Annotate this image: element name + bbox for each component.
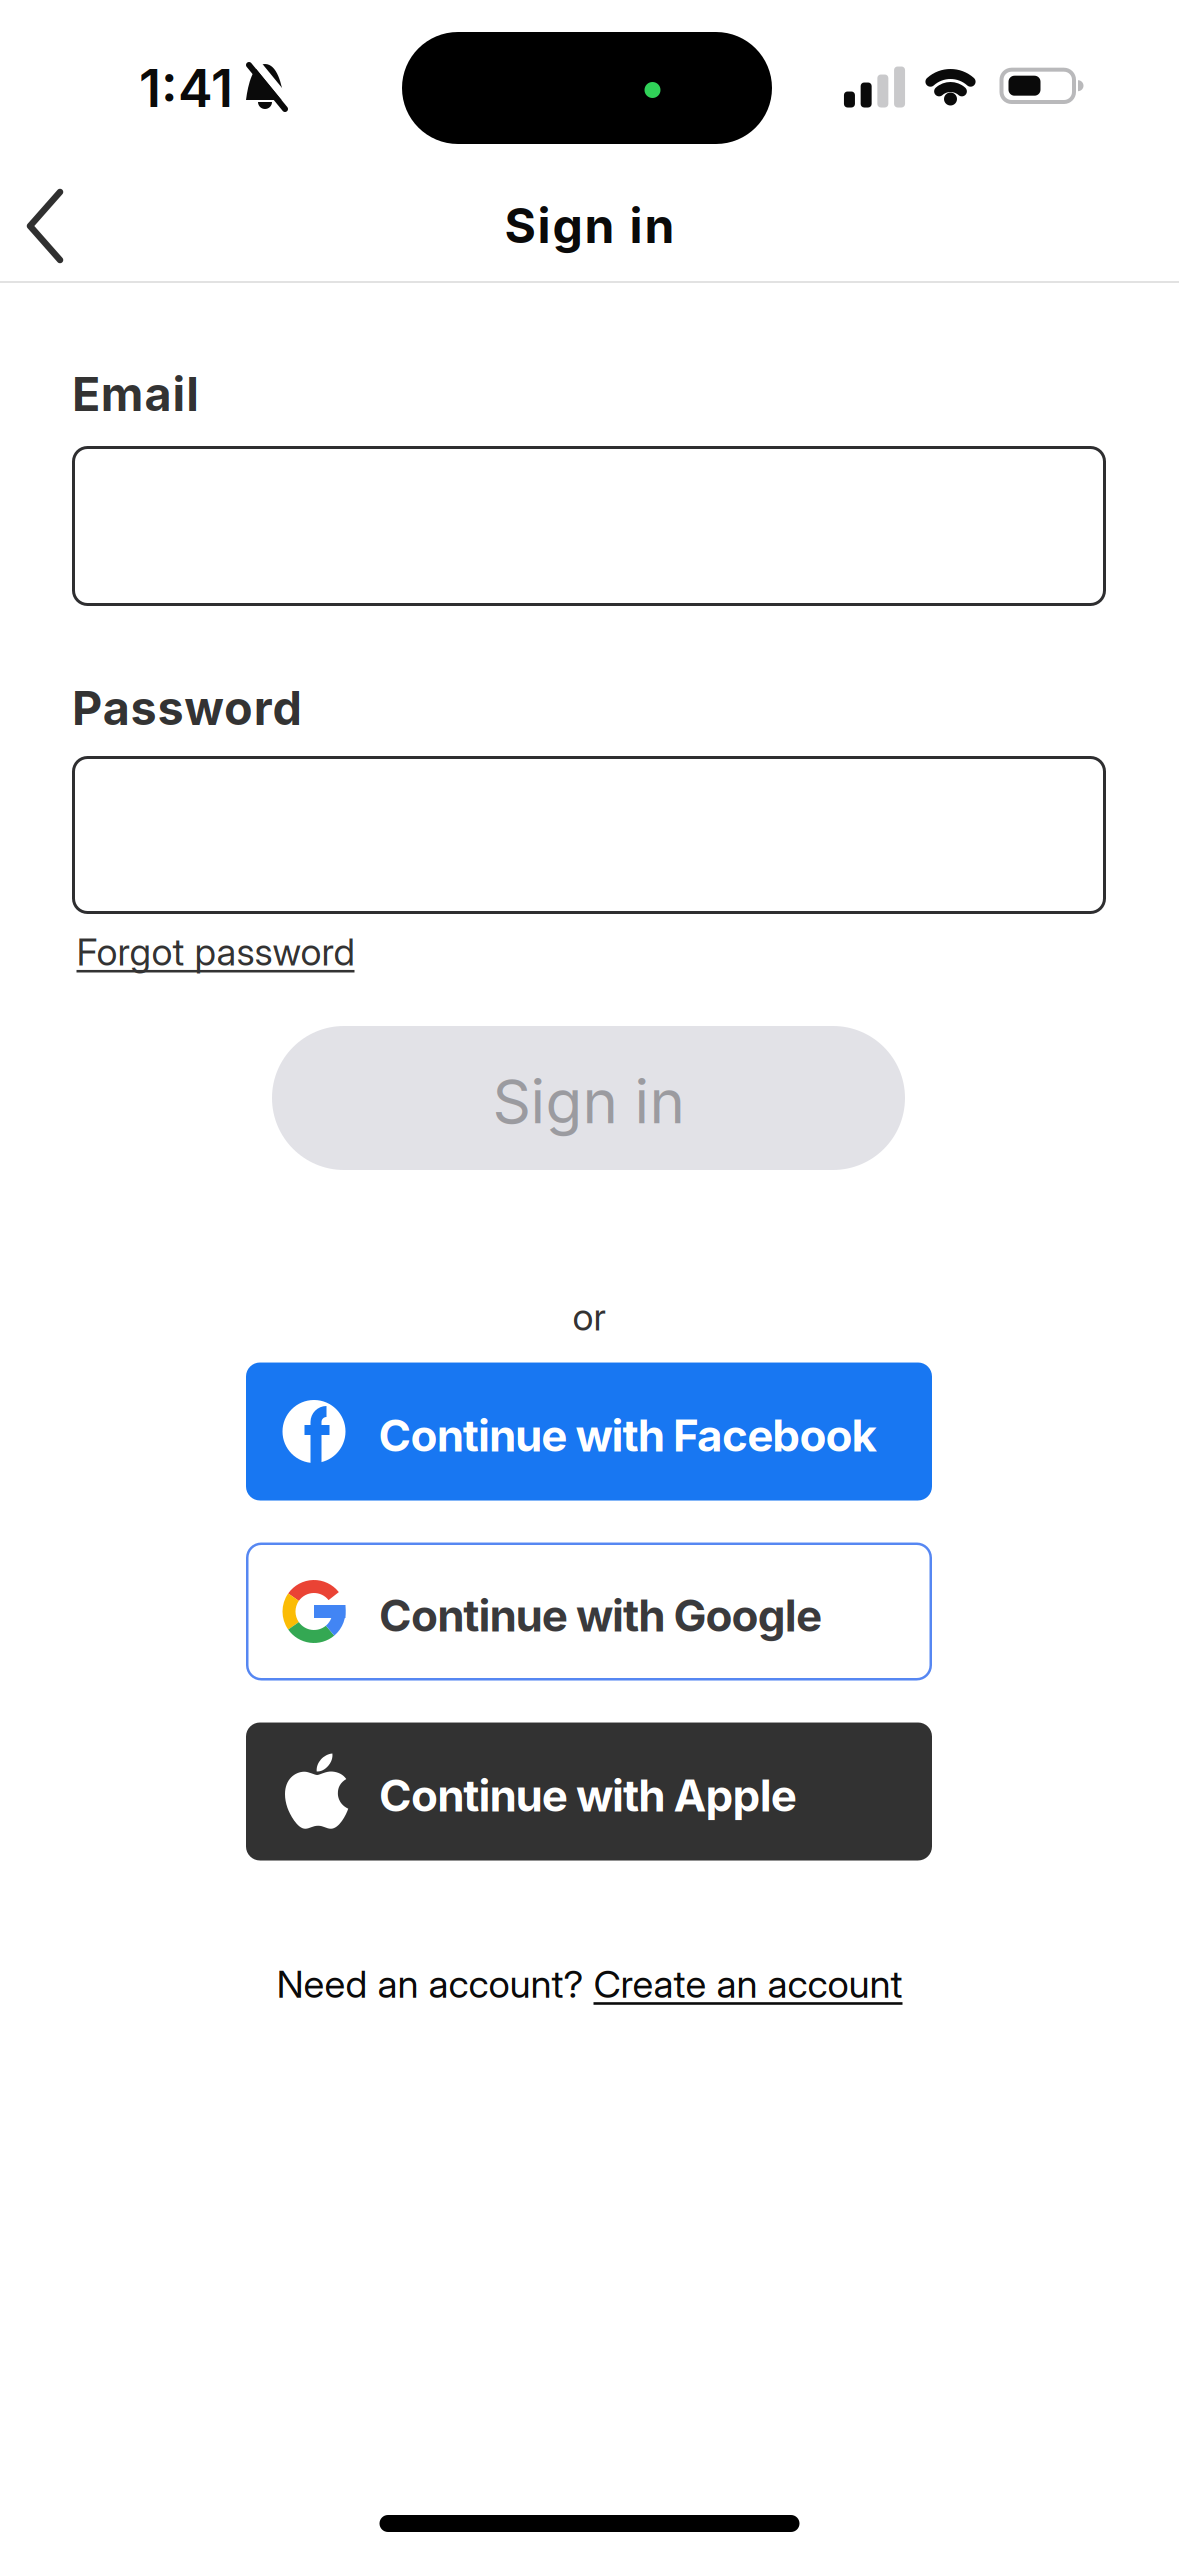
staticText: or xyxy=(572,1294,605,1340)
button[interactable]: Continue with Google xyxy=(246,1542,932,1680)
staticText: Continue with Google xyxy=(379,1589,822,1642)
staticText: Sign in xyxy=(492,1065,684,1138)
staticText: Email xyxy=(72,366,199,422)
staticText: 1:41 xyxy=(139,56,233,119)
staticText: Continue with Facebook xyxy=(378,1409,878,1462)
button[interactable]: Continue with Apple xyxy=(246,1722,932,1860)
staticText: Password xyxy=(72,680,302,736)
button[interactable]: Back xyxy=(23,186,67,266)
button[interactable]: Create an account xyxy=(593,1961,902,2007)
button[interactable]: Continue with Facebook xyxy=(246,1362,932,1500)
button[interactable]: Email xyxy=(72,446,1106,606)
button[interactable]: Password xyxy=(72,756,1106,914)
button[interactable]: Sign in xyxy=(272,1026,905,1170)
staticText: Need an account? xyxy=(276,1961,593,2007)
staticText: Create an account xyxy=(593,1961,902,2007)
button[interactable]: Forgot password xyxy=(76,929,354,975)
staticText: Continue with Apple xyxy=(379,1769,797,1822)
staticText: Sign in xyxy=(504,196,674,255)
staticText: Forgot password xyxy=(76,929,354,975)
